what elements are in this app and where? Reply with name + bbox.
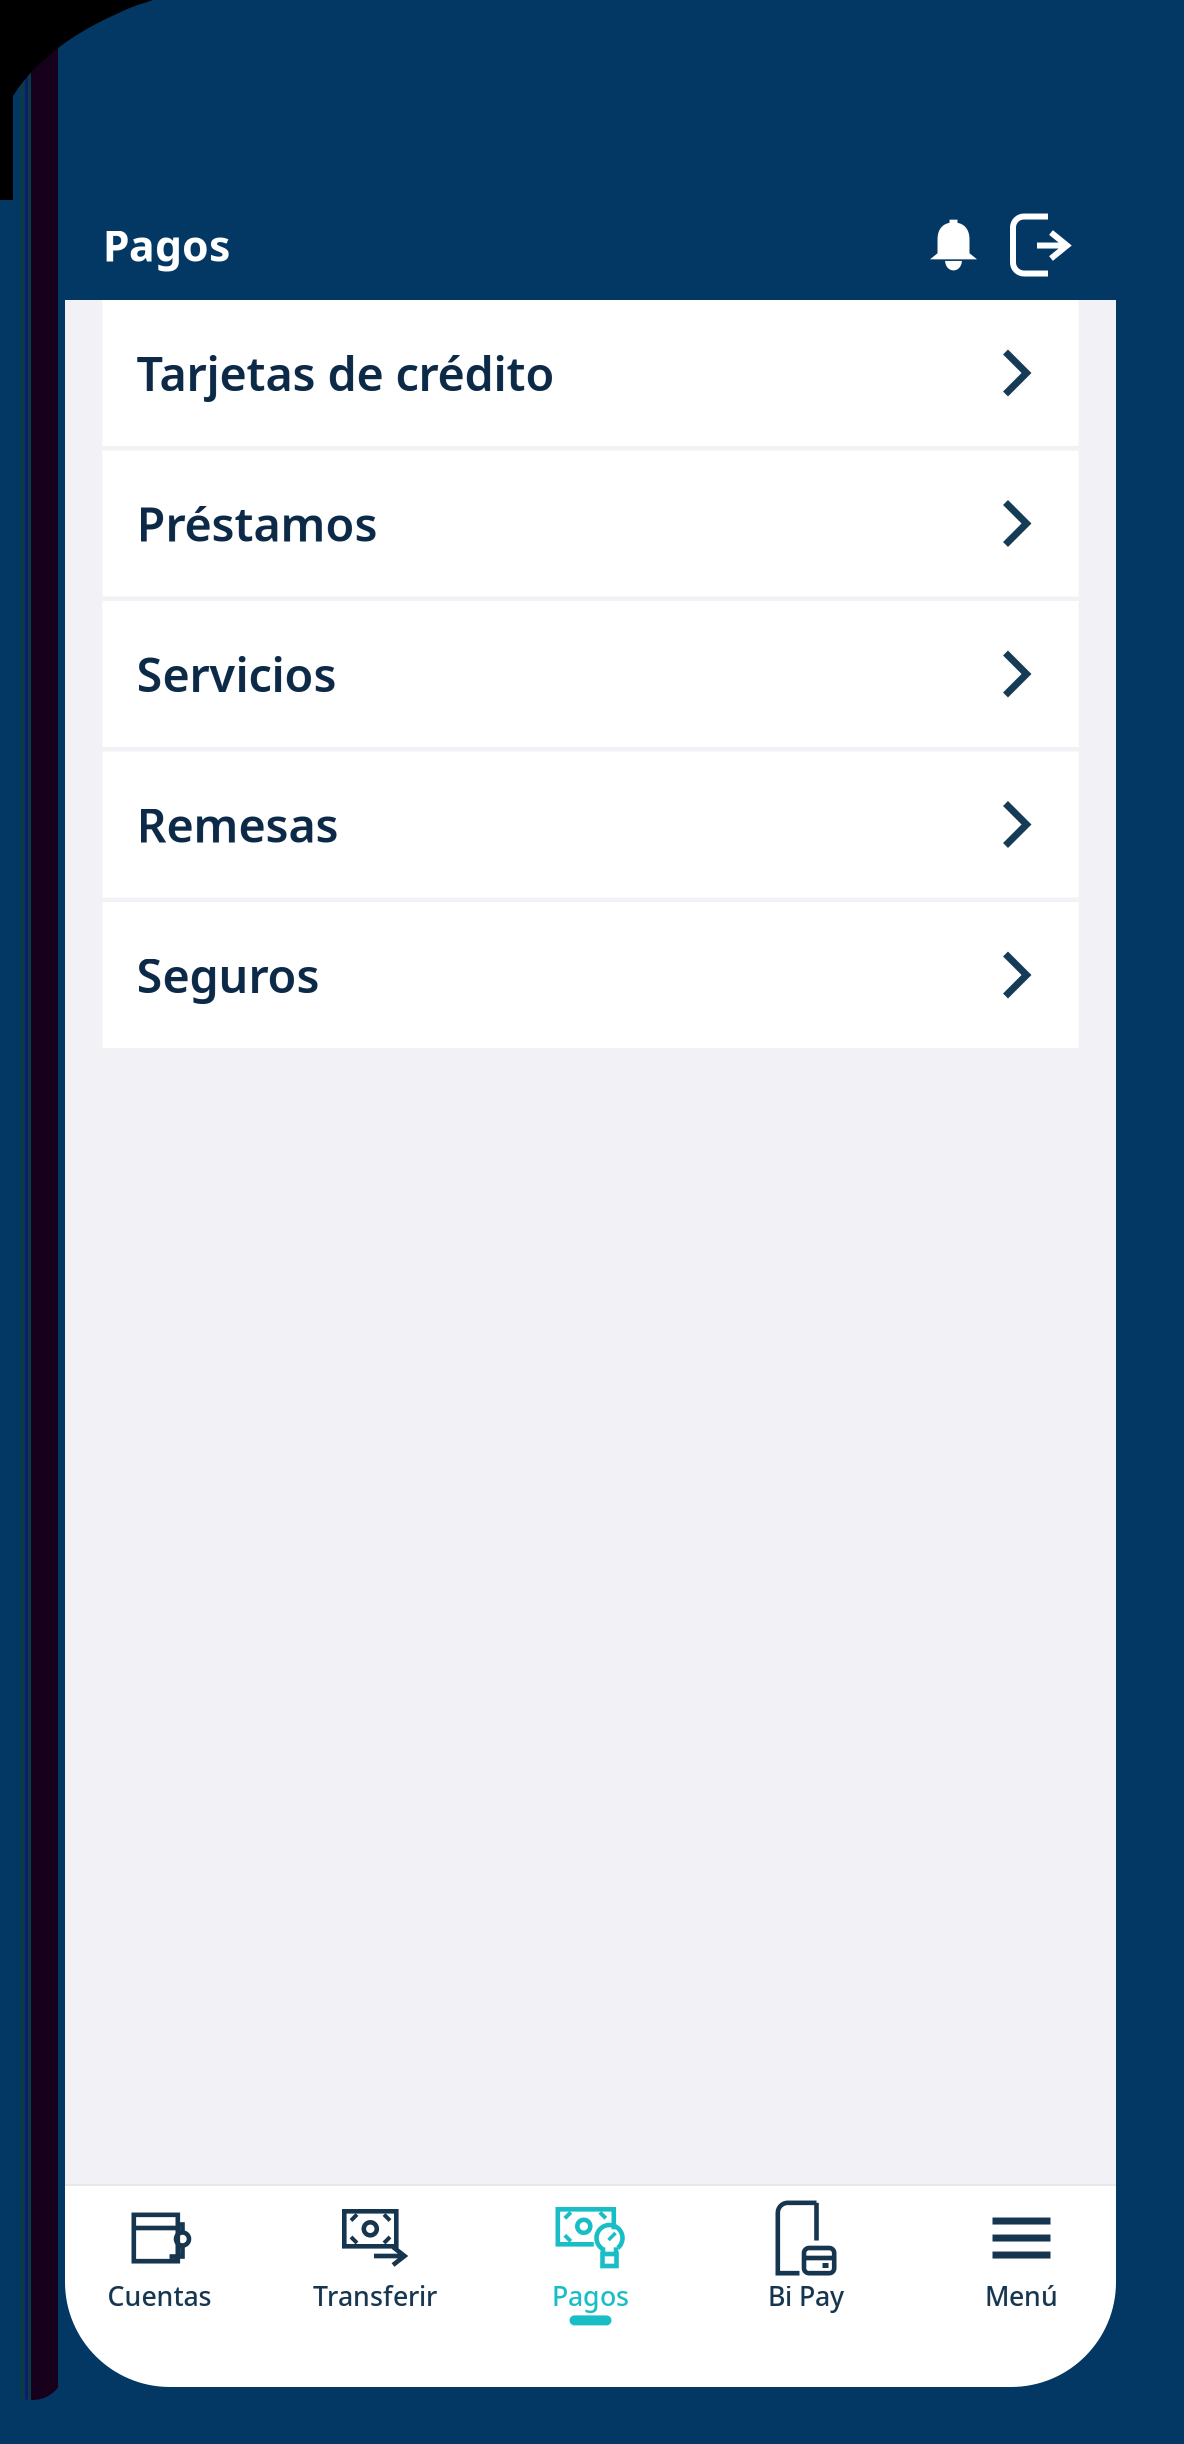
button[interactable]: Bi Pay	[698, 2186, 914, 2387]
button[interactable]: Seguros	[102, 902, 1078, 1048]
staticText: Transferir	[313, 2278, 437, 2313]
staticText: Servicios	[136, 643, 336, 705]
button[interactable]: Cuentas	[52, 2186, 267, 2387]
button[interactable]: Notificaciones	[930, 209, 977, 281]
button[interactable]: Servicios	[102, 601, 1078, 747]
staticText: Menú	[985, 2278, 1058, 2313]
staticText: Pagos	[103, 217, 230, 273]
staticText: Préstamos	[136, 492, 377, 554]
staticText: Bi Pay	[768, 2278, 844, 2313]
button[interactable]: Tarjetas de crédito	[102, 300, 1078, 446]
button[interactable]: Cerrar sesión	[1010, 209, 1070, 281]
staticText: Remesas	[136, 793, 338, 855]
button[interactable]: Menú	[914, 2186, 1129, 2387]
button[interactable]: Transferir	[267, 2186, 483, 2387]
staticText: Tarjetas de crédito	[136, 342, 554, 404]
staticText: Seguros	[136, 944, 319, 1006]
button[interactable]: Préstamos	[102, 450, 1078, 596]
staticText: Cuentas	[107, 2278, 211, 2313]
button[interactable]: Remesas	[102, 751, 1078, 897]
staticText: Pagos	[552, 2278, 629, 2313]
button[interactable]: Pagos	[483, 2186, 698, 2387]
